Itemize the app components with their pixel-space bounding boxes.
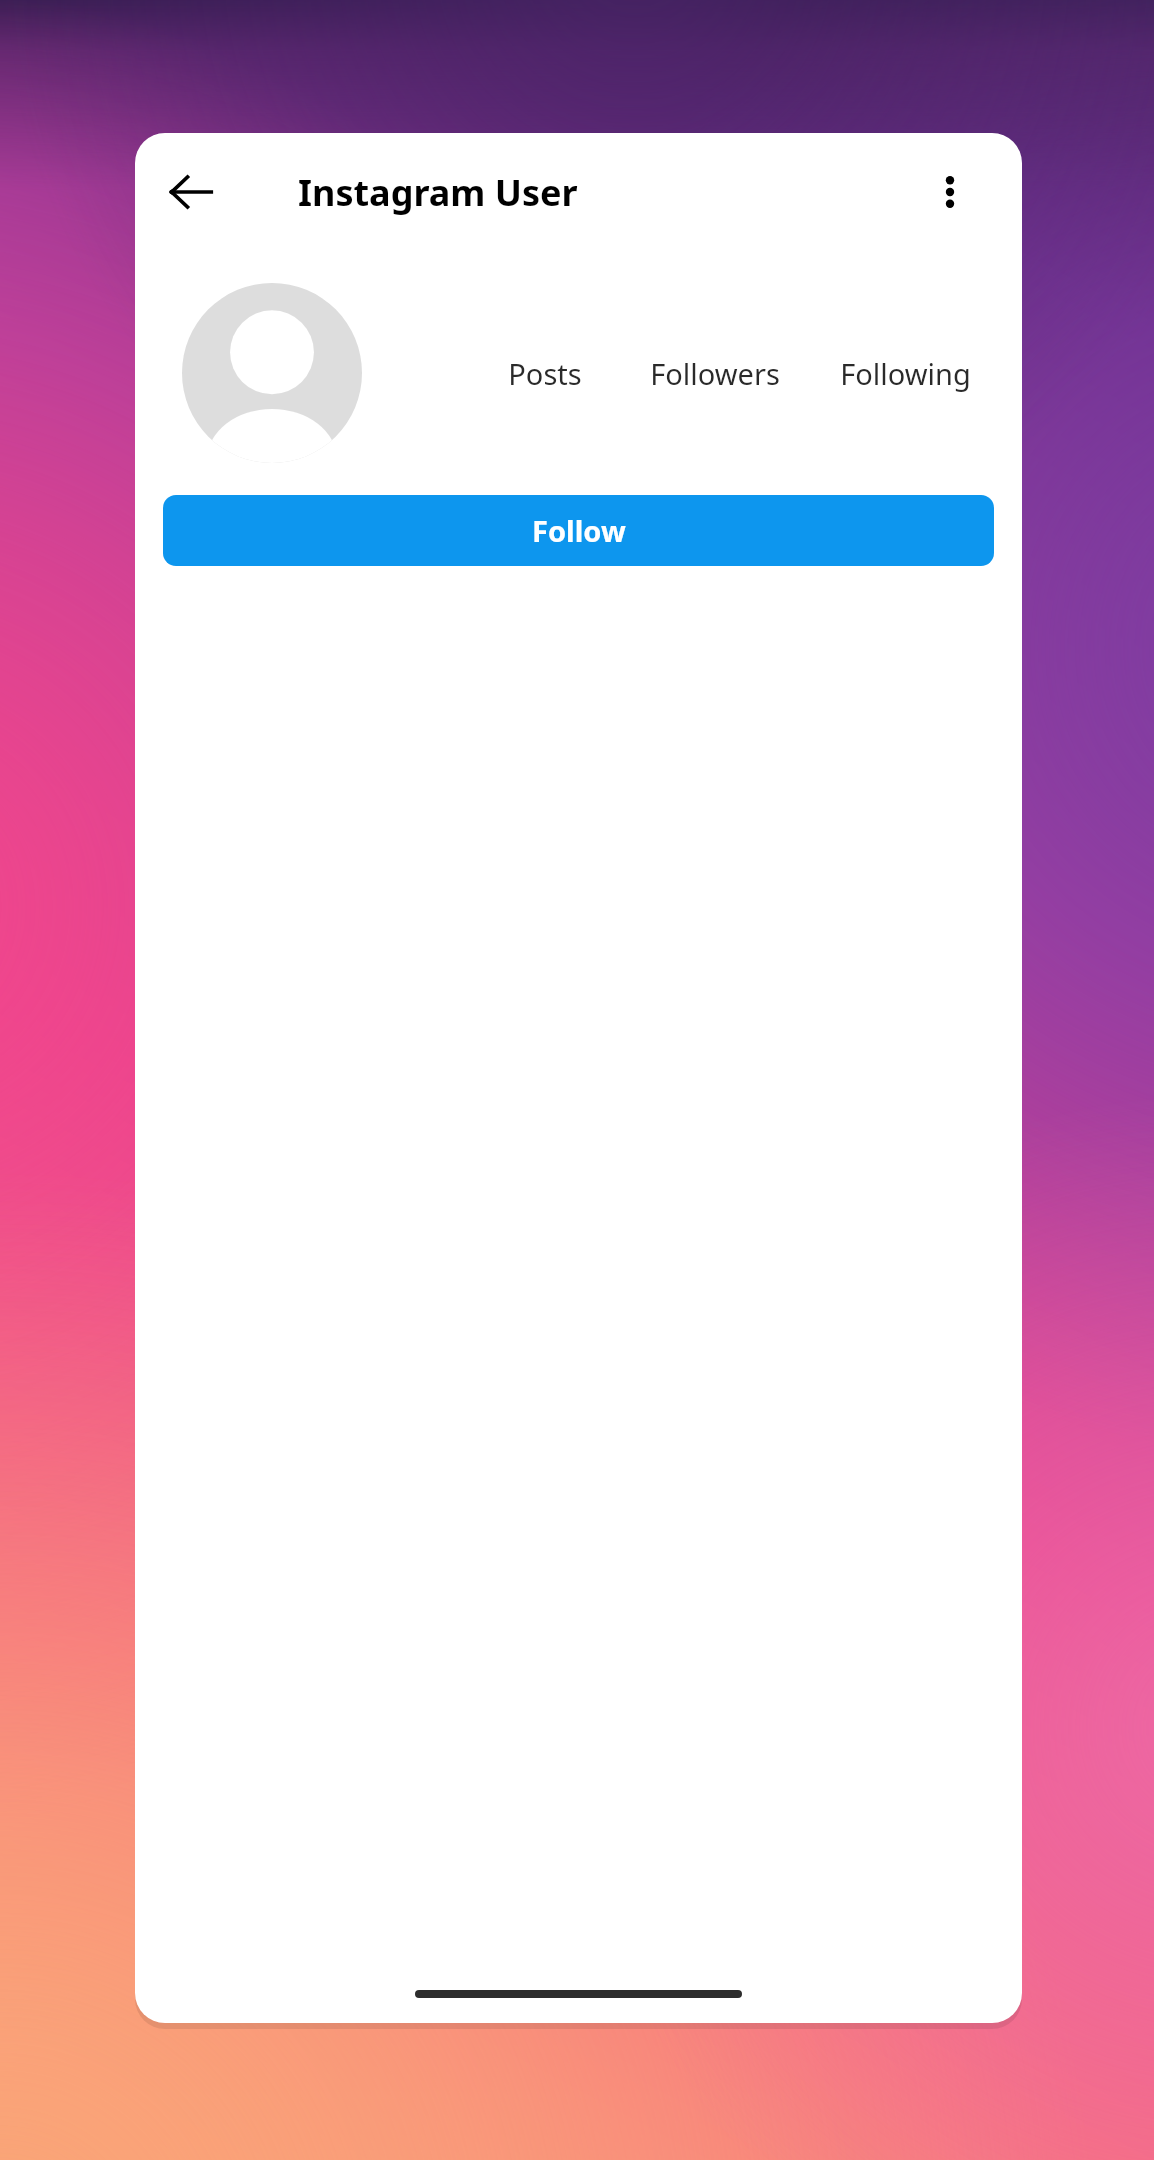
staticText: Followers	[650, 354, 780, 393]
button[interactable]: Posts	[470, 328, 620, 418]
button[interactable]: Following	[810, 328, 1000, 418]
button[interactable]: Followers	[620, 328, 810, 418]
staticText: Posts	[508, 354, 582, 393]
staticText: Instagram User	[298, 168, 578, 217]
staticText: Follow	[532, 511, 626, 550]
button[interactable]: Back	[153, 154, 229, 230]
staticText: Following	[840, 354, 971, 393]
button[interactable]: Follow	[163, 495, 994, 566]
button[interactable]: More options	[914, 156, 986, 228]
